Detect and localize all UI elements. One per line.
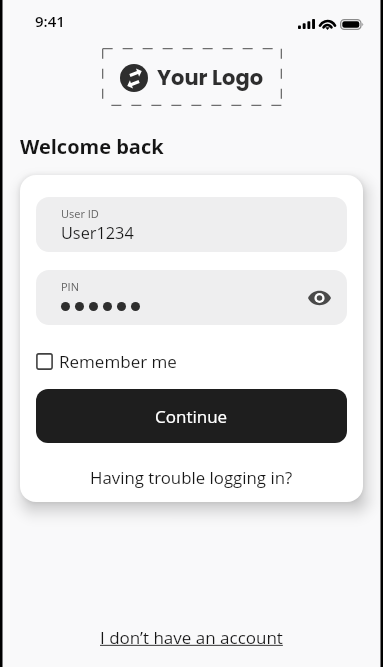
button[interactable]: Remember me (36, 344, 177, 379)
staticText: I don’t have an account (100, 626, 283, 649)
staticText: PIN (61, 279, 79, 294)
button[interactable]: PIN (36, 270, 347, 325)
staticText: User ID (61, 206, 99, 221)
button[interactable]: I don’t have an account (96, 622, 287, 653)
staticText: Welcome back (20, 133, 164, 160)
staticText: 9:41 (35, 11, 65, 31)
button[interactable]: Having trouble logging in? (84, 460, 299, 495)
button[interactable]: Your Logo (120, 63, 264, 92)
staticText: User1234 (61, 222, 134, 244)
button[interactable]: Show PIN (304, 283, 334, 313)
staticText: Having trouble logging in? (90, 466, 293, 489)
staticText: Your Logo (157, 63, 264, 92)
staticText: Continue (155, 405, 228, 428)
staticText: Remember me (59, 350, 177, 373)
button[interactable]: User ID (36, 197, 347, 252)
button[interactable]: Continue (36, 389, 347, 443)
